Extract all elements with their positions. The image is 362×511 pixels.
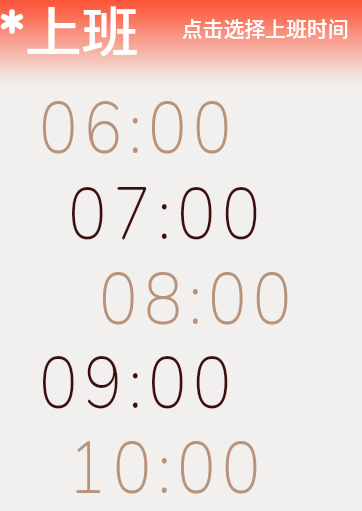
button[interactable]: 10:00 (68, 419, 298, 497)
other: Required (0, 9, 24, 34)
button[interactable]: 07:00 (68, 165, 298, 243)
staticText: 10:00 (68, 419, 267, 497)
button[interactable]: 点击选择上班时间 (182, 13, 349, 43)
staticText: 06:00 (39, 79, 238, 157)
button[interactable]: 06:00 (39, 79, 269, 157)
staticText: 09:00 (39, 334, 238, 412)
button[interactable]: 08:00 (99, 250, 329, 328)
staticText: 上班 (25, 0, 138, 68)
button[interactable]: 09:00 (39, 334, 269, 412)
staticText: 07:00 (68, 165, 267, 243)
staticText: 08:00 (99, 250, 298, 328)
